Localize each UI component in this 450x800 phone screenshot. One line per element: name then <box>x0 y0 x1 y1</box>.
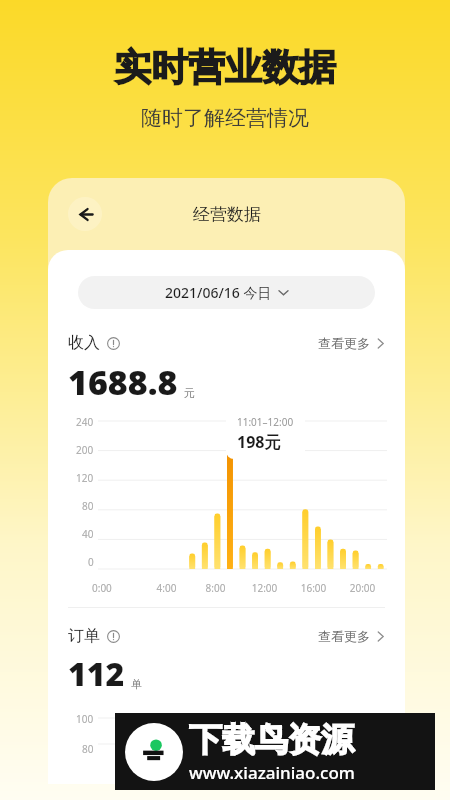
staticText: 实时营业数据 <box>114 44 336 91</box>
staticText: 16:00 <box>289 581 338 595</box>
staticText: 0 <box>88 555 94 569</box>
button[interactable]: 查看更多 <box>318 335 385 351</box>
staticText: 查看更多 <box>318 628 370 644</box>
button[interactable]: 2021/06/16 今日 <box>78 276 375 309</box>
staticText: 0:00 <box>92 581 142 595</box>
staticText: 1688.8 <box>68 359 178 405</box>
staticText: 随时了解经营情况 <box>141 105 309 131</box>
staticText: 下载鸟资源 <box>189 719 354 761</box>
staticText: 112 <box>68 652 125 696</box>
staticText: 经营数据 <box>193 204 261 225</box>
button[interactable]: Info <box>107 630 120 643</box>
staticText: 11:01–12:00 <box>237 415 294 429</box>
staticText: 2021/06/16 今日 <box>165 283 272 302</box>
staticText: 4:00 <box>142 581 191 595</box>
staticText: www.xiazainiao.com <box>189 761 355 784</box>
staticText: 8:00 <box>191 581 240 595</box>
staticText: 80 <box>82 499 94 513</box>
staticText: 240 <box>76 415 94 429</box>
staticText: 100 <box>76 712 94 726</box>
button[interactable]: Info <box>107 337 120 350</box>
staticText: 198元 <box>237 431 281 453</box>
button[interactable]: Back <box>68 197 102 231</box>
staticText: 80 <box>82 742 94 756</box>
staticText: 订单 <box>68 626 100 646</box>
staticText: 120 <box>76 471 94 485</box>
staticText: 20:00 <box>338 581 387 595</box>
staticText: 200 <box>76 443 94 457</box>
staticText: 单 <box>131 677 142 691</box>
staticText: 查看更多 <box>318 335 370 351</box>
staticText: 40 <box>82 527 94 541</box>
staticText: 元 <box>184 386 195 400</box>
button[interactable]: 查看更多 <box>318 628 385 644</box>
staticText: 收入 <box>68 333 100 353</box>
staticText: 12:00 <box>240 581 289 595</box>
